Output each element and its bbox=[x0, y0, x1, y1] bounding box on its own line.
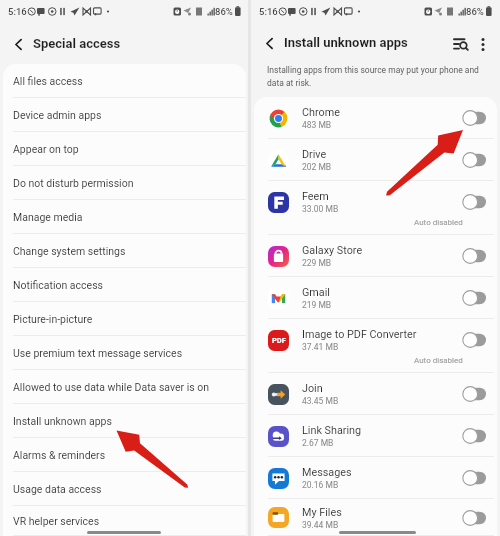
staticText: 43.45 MB bbox=[302, 396, 339, 406]
button[interactable]: Drive bbox=[254, 139, 497, 181]
staticText: 5:16 bbox=[259, 6, 278, 17]
staticText: Device admin apps bbox=[13, 109, 102, 121]
button[interactable]: Usage data access bbox=[3, 472, 246, 506]
staticText: Gmail bbox=[302, 286, 330, 299]
staticText: 86% bbox=[466, 6, 484, 17]
button[interactable]: Search bbox=[446, 29, 476, 59]
staticText: Galaxy Store bbox=[302, 244, 363, 257]
button[interactable]: Alarms & reminders bbox=[3, 438, 246, 472]
button[interactable]: Messages bbox=[254, 457, 497, 499]
button[interactable]: Toggle permission bbox=[462, 152, 486, 168]
staticText: Notification access bbox=[13, 279, 103, 291]
button[interactable]: Toggle permission bbox=[462, 194, 486, 210]
staticText: 483 MB bbox=[302, 120, 332, 130]
button[interactable]: Appear on top bbox=[3, 132, 246, 166]
button[interactable]: Device admin apps bbox=[3, 98, 246, 132]
staticText: 219 MB bbox=[302, 300, 332, 310]
staticText: Installing apps from this source may put… bbox=[267, 65, 479, 88]
staticText: 39.44 MB bbox=[302, 520, 339, 530]
staticText: Manage media bbox=[13, 211, 83, 223]
button[interactable]: My Files bbox=[254, 499, 497, 536]
staticText: 229 MB bbox=[302, 258, 332, 268]
staticText: Alarms & reminders bbox=[13, 449, 106, 461]
staticText: 202 MB bbox=[302, 162, 332, 172]
button[interactable]: Gmail bbox=[254, 277, 497, 319]
staticText: Messages bbox=[302, 466, 352, 479]
button[interactable]: Change system settings bbox=[3, 234, 246, 268]
staticText: Chrome bbox=[302, 106, 340, 119]
button[interactable]: Toggle permission bbox=[462, 290, 486, 306]
staticText: Drive bbox=[302, 148, 327, 161]
button[interactable]: Use premium text message services bbox=[3, 336, 246, 370]
staticText: 86% bbox=[215, 6, 233, 17]
button[interactable]: Picture-in-picture bbox=[3, 302, 246, 336]
staticText: Use premium text message services bbox=[13, 347, 183, 359]
staticText: 37.41 MB bbox=[302, 342, 339, 352]
button[interactable]: Toggle permission bbox=[462, 248, 486, 264]
button[interactable]: Manage media bbox=[3, 200, 246, 234]
staticText: All files access bbox=[13, 75, 83, 87]
staticText: VR helper services bbox=[13, 515, 100, 527]
button[interactable]: Toggle permission bbox=[462, 428, 486, 444]
button[interactable]: Link Sharing bbox=[254, 415, 497, 457]
button[interactable]: Join bbox=[254, 373, 497, 415]
button[interactable]: Toggle permission bbox=[462, 470, 486, 486]
staticText: My Files bbox=[302, 506, 342, 519]
staticText: 2.67 MB bbox=[302, 438, 334, 448]
button[interactable]: Notification access bbox=[3, 268, 246, 302]
button[interactable]: Feem bbox=[254, 181, 497, 235]
staticText: 20.16 MB bbox=[302, 480, 339, 490]
staticText: Install unknown apps bbox=[13, 415, 112, 427]
button[interactable]: Toggle permission bbox=[462, 386, 486, 402]
staticText: 5:16 bbox=[8, 6, 27, 17]
button[interactable]: More options bbox=[468, 29, 498, 59]
staticText: PDF bbox=[272, 336, 286, 345]
staticText: Join bbox=[302, 382, 323, 395]
button[interactable]: Toggle permission bbox=[462, 110, 486, 126]
staticText: 33.00 MB bbox=[302, 204, 339, 214]
button[interactable]: Navigate up bbox=[255, 29, 283, 57]
button[interactable]: All files access bbox=[3, 64, 246, 98]
staticText: Allowed to use data while Data saver is … bbox=[13, 381, 210, 393]
staticText: Image to PDF Converter bbox=[302, 328, 417, 341]
staticText: Do not disturb permission bbox=[13, 177, 134, 189]
staticText: Feem bbox=[302, 190, 329, 203]
button[interactable]: Chrome bbox=[254, 97, 497, 139]
button[interactable]: Navigate up bbox=[4, 30, 32, 58]
button[interactable]: PDF bbox=[254, 319, 497, 373]
button[interactable]: VR helper services bbox=[3, 506, 246, 536]
staticText: Link Sharing bbox=[302, 424, 362, 437]
staticText: Auto disabled bbox=[414, 356, 463, 365]
button[interactable]: Install unknown apps bbox=[3, 404, 246, 438]
staticText: Usage data access bbox=[13, 483, 102, 495]
staticText: Appear on top bbox=[13, 143, 79, 155]
staticText: Auto disabled bbox=[414, 218, 463, 227]
staticText: Install unknown apps bbox=[284, 35, 408, 50]
button[interactable]: Galaxy Store bbox=[254, 235, 497, 277]
button[interactable]: Toggle permission bbox=[462, 510, 486, 526]
button[interactable]: Toggle permission bbox=[462, 332, 486, 348]
staticText: Picture-in-picture bbox=[13, 313, 93, 325]
button[interactable]: Allowed to use data while Data saver is … bbox=[3, 370, 246, 404]
button[interactable]: Do not disturb permission bbox=[3, 166, 246, 200]
staticText: Change system settings bbox=[13, 245, 126, 257]
staticText: Special access bbox=[33, 36, 121, 51]
